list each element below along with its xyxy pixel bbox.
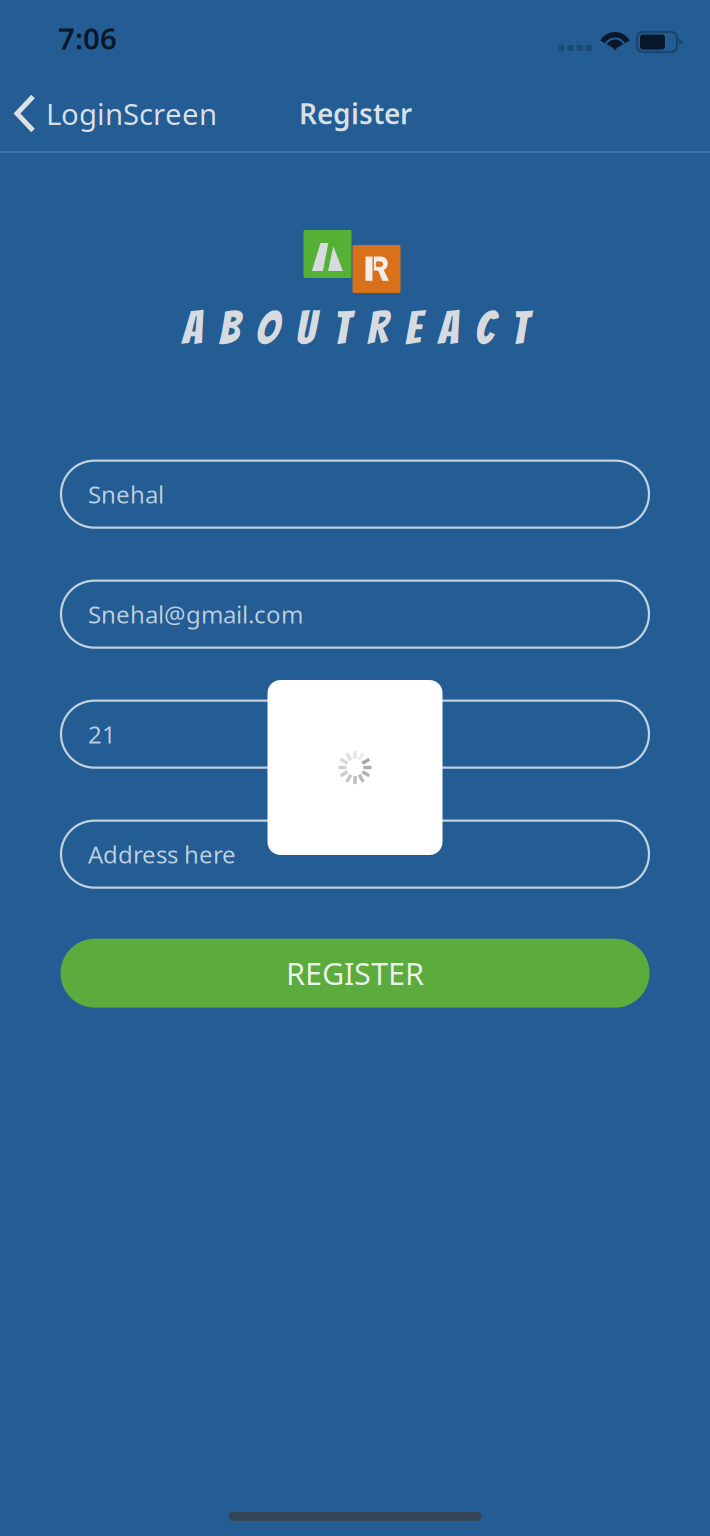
- button[interactable]: Snehal@gmail.com: [61, 581, 649, 648]
- staticText: Address here: [88, 838, 236, 870]
- staticText: Register: [299, 95, 412, 132]
- staticText: Snehal@gmail.com: [88, 598, 303, 630]
- staticText: REGISTER: [286, 953, 424, 993]
- staticText: LoginScreen: [46, 94, 217, 133]
- button[interactable]: Address here: [61, 821, 649, 888]
- staticText: Snehal: [88, 478, 164, 510]
- button[interactable]: Snehal: [61, 461, 649, 528]
- staticText: 21: [88, 718, 116, 750]
- button[interactable]: REGISTER: [60, 939, 649, 1008]
- button[interactable]: Back to LoginScreen: [0, 76, 230, 151]
- staticText: 7:06: [58, 18, 117, 57]
- staticText: ABOUTREACT: [182, 303, 528, 353]
- button[interactable]: 21: [61, 701, 649, 768]
